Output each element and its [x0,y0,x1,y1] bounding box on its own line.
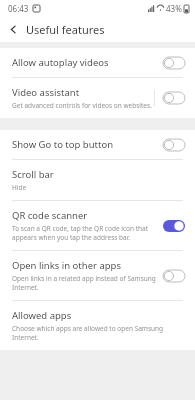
button[interactable]: QR code scanner [0,201,195,250]
staticText: Show Go to top button [12,138,114,151]
button[interactable]: Back [0,16,26,42]
staticText: Get advanced controls for videos on webs… [12,101,152,110]
staticText: 43% [166,3,182,14]
button[interactable]: Show Go to top button [0,130,195,159]
staticText: Video assistant [12,86,80,99]
button[interactable]: Allowed apps [0,301,195,350]
button[interactable]: Toggle off [163,92,185,104]
staticText: Allow autoplay videos [12,56,109,69]
button[interactable]: Toggle off [163,57,185,69]
staticText: QR code scanner [12,209,88,222]
staticText: To scan a QR code, tap the QR code icon … [12,224,157,242]
button[interactable]: Allow autoplay videos [0,48,195,77]
staticText: 06:43 [8,3,29,14]
button[interactable]: Toggle off [163,139,185,151]
button[interactable]: Open links in other apps [0,251,195,300]
staticText: Open links in a related app instead of S… [12,274,157,292]
staticText: Open links in other apps [12,259,121,272]
button[interactable]: Scroll bar [0,160,195,200]
button[interactable]: Toggle off [163,270,185,282]
staticText: Hide [12,183,27,192]
button[interactable]: Toggle on [163,220,185,232]
staticText: Choose which apps are allowed to open Sa… [12,324,185,342]
staticText: Useful features [26,22,105,37]
button[interactable]: Video assistant [0,78,195,118]
staticText: Scroll bar [12,168,54,181]
staticText: Allowed apps [12,309,72,322]
